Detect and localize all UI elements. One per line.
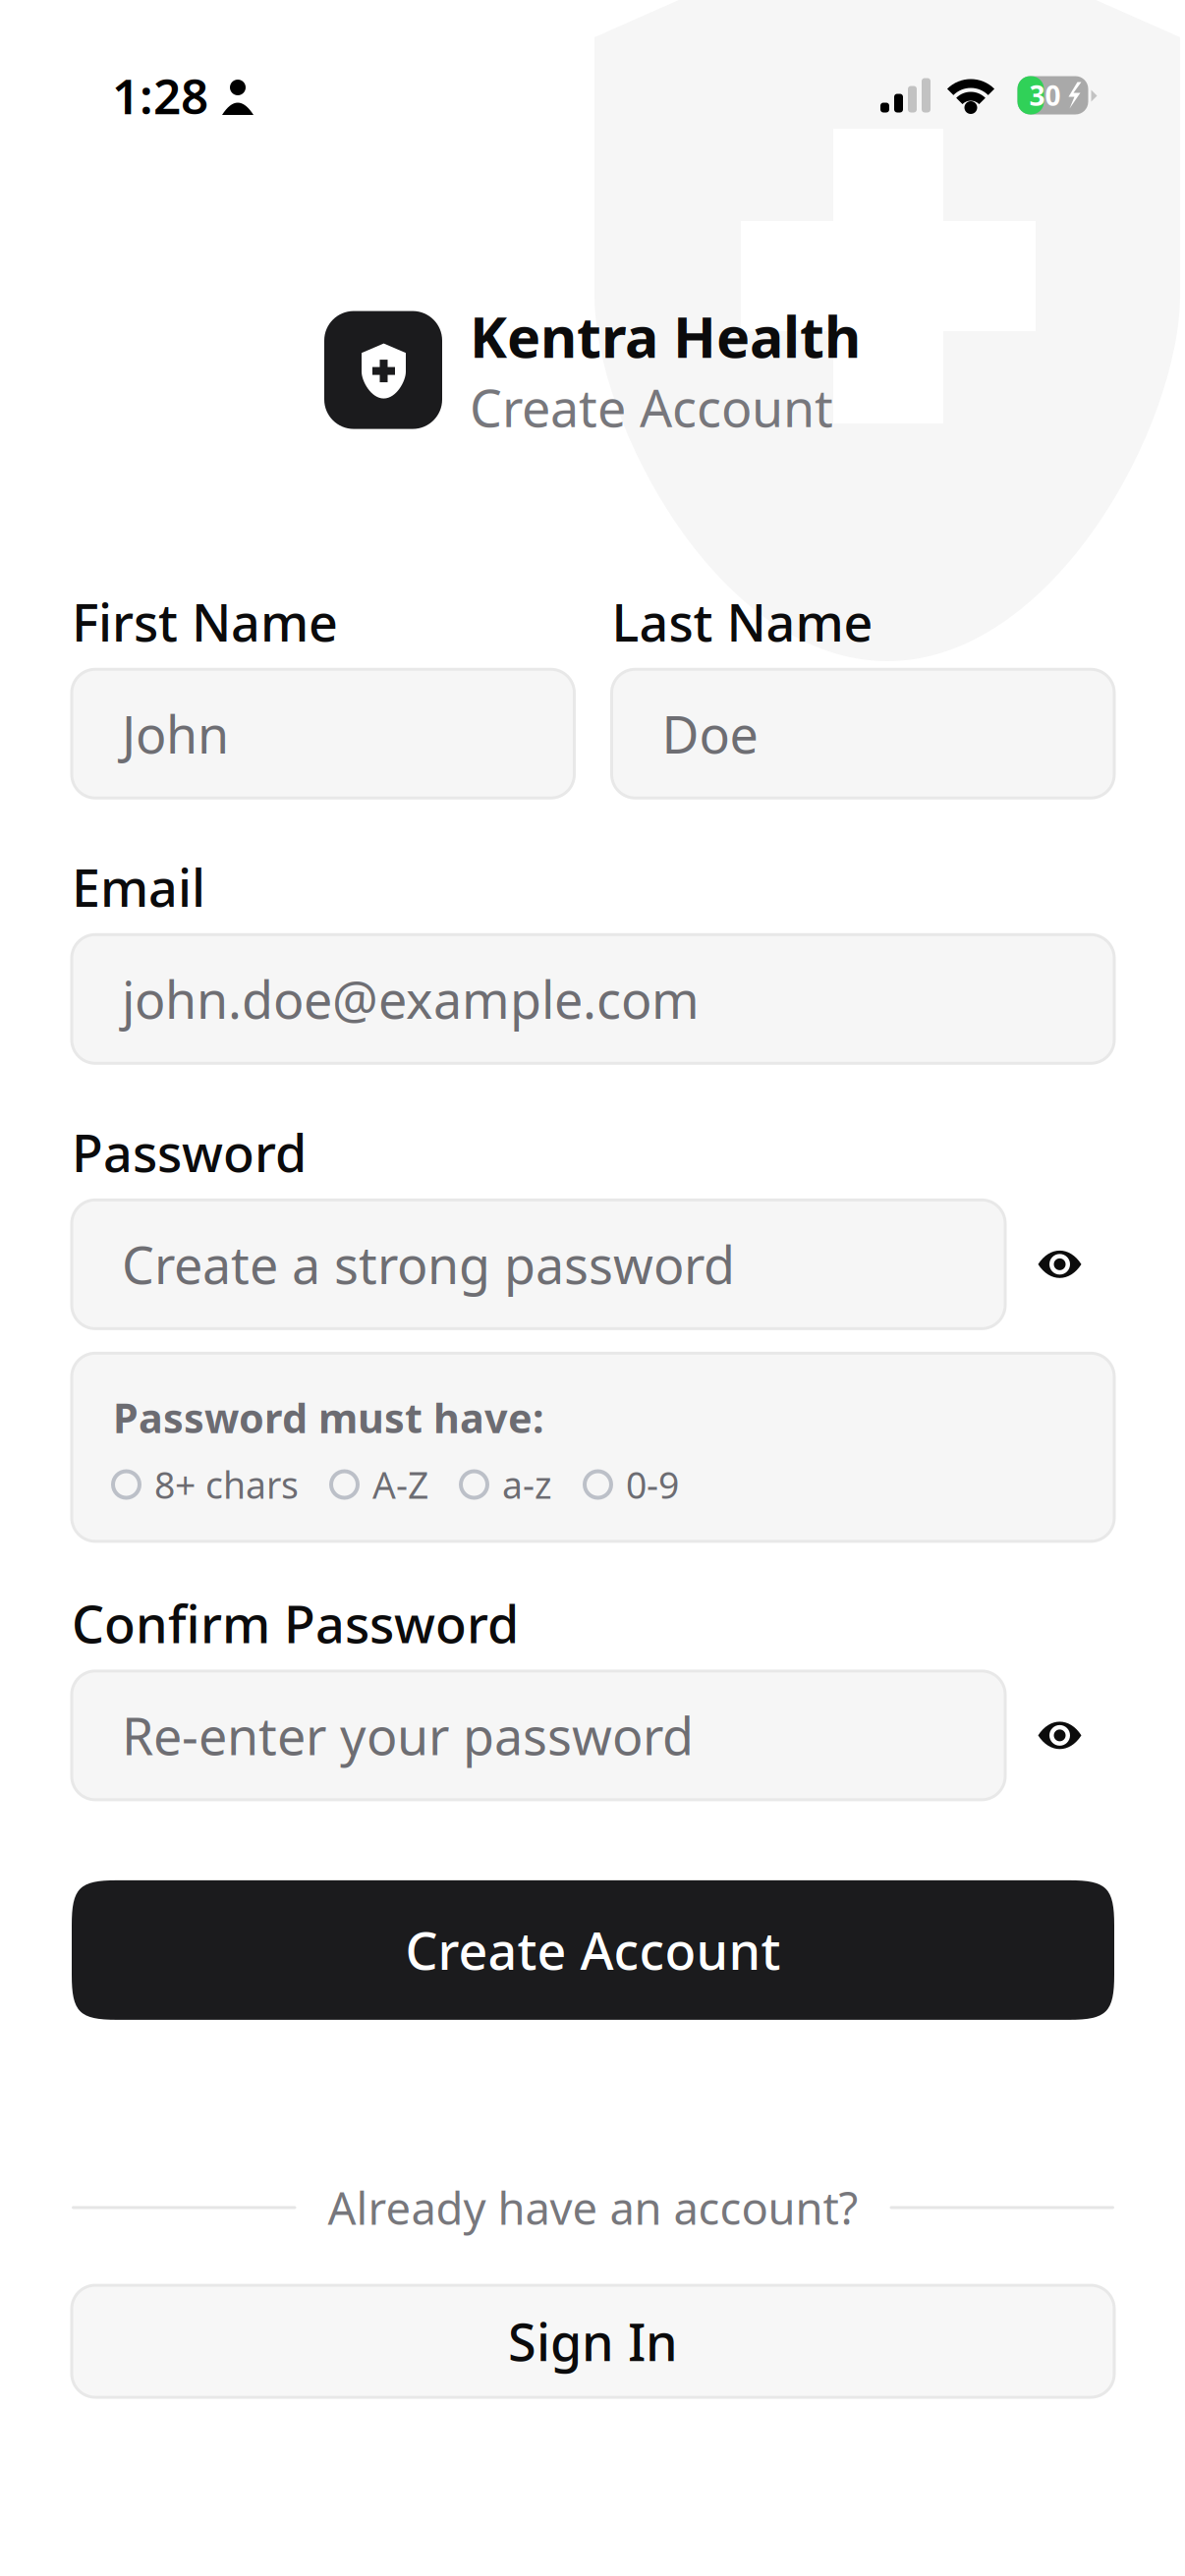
- staticText: A-Z: [372, 1460, 428, 1509]
- staticText: Already have an account?: [328, 2178, 858, 2237]
- staticText: Doe: [662, 700, 758, 768]
- staticText: Create a strong password: [122, 1230, 735, 1298]
- staticText: 1:28: [112, 63, 208, 127]
- button[interactable]: Create a strong password: [72, 1200, 1005, 1329]
- staticText: Re-enter your password: [122, 1701, 694, 1769]
- staticText: Kentra Health: [470, 299, 861, 373]
- staticText: Last Name: [612, 588, 873, 656]
- staticText: a-z: [502, 1460, 552, 1509]
- button[interactable]: Re-enter your password: [72, 1671, 1005, 1800]
- button[interactable]: Doe: [612, 669, 1114, 798]
- staticText: First Name: [72, 588, 338, 656]
- staticText: Create Account: [470, 373, 833, 441]
- staticText: Confirm Password: [72, 1589, 519, 1657]
- button[interactable]: Create Account: [72, 1880, 1114, 2020]
- staticText: Sign In: [508, 2307, 678, 2375]
- button[interactable]: john.doe@example.com: [72, 935, 1114, 1063]
- button[interactable]: John: [72, 669, 574, 798]
- staticText: Create Account: [405, 1916, 781, 1984]
- button[interactable]: Show confirm password: [1005, 1671, 1114, 1800]
- staticText: 30: [1029, 77, 1061, 114]
- button[interactable]: Sign In: [72, 2285, 1114, 2397]
- staticText: Password: [72, 1118, 307, 1186]
- staticText: Password must have:: [113, 1391, 544, 1445]
- staticText: John: [122, 700, 229, 768]
- button[interactable]: Show password: [1005, 1200, 1114, 1329]
- staticText: john.doe@example.com: [122, 965, 700, 1033]
- staticText: Email: [72, 853, 205, 921]
- staticText: 0-9: [626, 1460, 679, 1509]
- staticText: 8+ chars: [154, 1460, 299, 1509]
